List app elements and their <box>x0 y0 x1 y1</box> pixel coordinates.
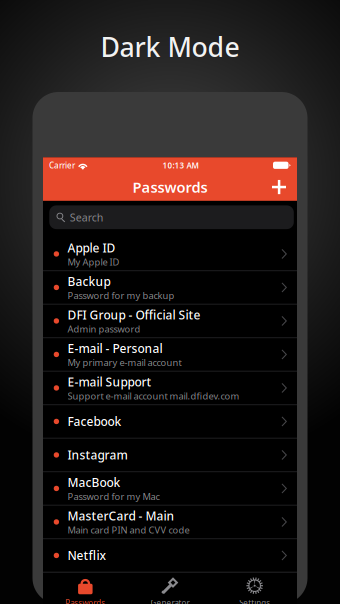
staticText: Admin password <box>67 323 140 335</box>
staticText: Netflix <box>67 547 106 563</box>
button[interactable]: MasterCard - Main <box>43 506 297 538</box>
staticText: Settings <box>239 598 270 604</box>
staticText: My Apple ID <box>67 256 119 268</box>
button[interactable]: E-mail - Personal <box>43 338 297 371</box>
staticText: Passwords <box>132 177 207 197</box>
staticText: E-mail - Personal <box>67 340 162 356</box>
staticText: Generator <box>150 598 189 604</box>
staticText: 10:13 AM <box>163 160 199 171</box>
staticText: Backup <box>67 273 110 289</box>
staticText: Dark Mode <box>100 29 239 64</box>
button[interactable]: Facebook <box>43 405 297 438</box>
staticText: My primary e-mail account <box>67 356 181 369</box>
staticText: Instagram <box>67 447 127 463</box>
staticText: Support e-mail account mail.dfidev.com <box>67 390 239 402</box>
staticText: Password for my backup <box>67 289 174 302</box>
button[interactable]: Instagram <box>43 439 297 471</box>
staticText: Passwords <box>65 598 105 604</box>
button[interactable]: Settings <box>212 573 297 604</box>
staticText: Facebook <box>67 413 121 429</box>
button[interactable]: Apple ID <box>43 238 297 270</box>
button[interactable]: Netflix <box>43 539 297 572</box>
button[interactable]: Add password <box>264 175 297 199</box>
button[interactable]: MacBook <box>43 472 297 505</box>
staticText: MasterCard - Main <box>67 508 174 524</box>
button[interactable]: Generator <box>128 573 212 604</box>
staticText: Apple ID <box>67 240 115 256</box>
staticText: Main card PIN and CVV code <box>67 524 189 536</box>
staticText: Carrier <box>49 160 75 171</box>
staticText: DFI Group - Official Site <box>67 307 200 323</box>
staticText: Search <box>70 210 104 224</box>
button[interactable]: Backup <box>43 271 297 304</box>
staticText: Password for my Mac <box>67 490 159 503</box>
button[interactable]: Passwords <box>43 573 128 604</box>
button[interactable]: DFI Group - Official Site <box>43 305 297 337</box>
staticText: MacBook <box>67 474 120 490</box>
staticText: E-mail Support <box>67 374 151 390</box>
button[interactable]: E-mail Support <box>43 372 297 404</box>
